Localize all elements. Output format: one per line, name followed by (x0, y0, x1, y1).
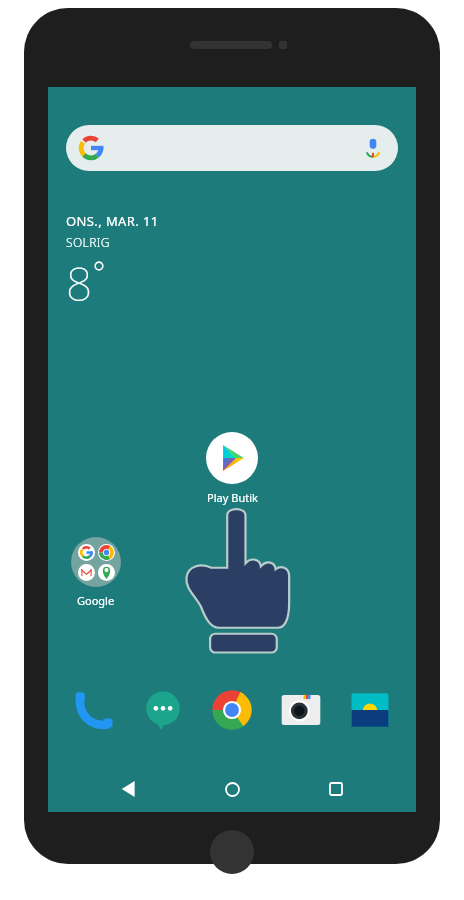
button[interactable]: Camera (275, 684, 327, 736)
button[interactable]: Recents (313, 766, 359, 812)
staticText: Play Butik (207, 490, 258, 505)
staticText: ONS., MAR. 11 (66, 212, 159, 230)
staticText: Google (77, 593, 115, 608)
button[interactable]: Chrome (206, 684, 258, 736)
button[interactable]: Back (106, 766, 152, 812)
staticText: SOLRIG (66, 234, 110, 250)
button[interactable]: Play Butik (198, 432, 266, 505)
staticText: 8 (66, 252, 93, 315)
button[interactable]: Google (62, 537, 130, 608)
button[interactable]: Voice search (66, 125, 398, 171)
other: Home button (210, 830, 254, 874)
button[interactable]: Messages (137, 684, 189, 736)
button[interactable]: ONS., MAR. 11 (66, 212, 159, 315)
other: Voice search (362, 137, 384, 159)
button[interactable]: Phone (68, 684, 120, 736)
button[interactable]: Photos (344, 684, 396, 736)
button[interactable]: Home (209, 766, 255, 812)
